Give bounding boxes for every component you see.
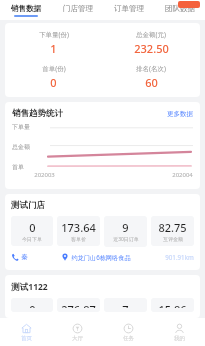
button[interactable]: Location [61, 253, 131, 261]
staticText: 团队数据 [165, 4, 195, 13]
staticText: 大厅 [72, 335, 83, 342]
staticText: 首单 [12, 163, 24, 171]
staticText: 60 [145, 75, 158, 90]
staticText: 互评金额 [163, 236, 183, 242]
staticText: 排名(名次) [136, 64, 166, 73]
staticText: 9 [122, 220, 129, 235]
button[interactable]: 首单(份) [5, 64, 102, 90]
button[interactable]: 首页 [0, 318, 52, 346]
staticText: 今日下单 [22, 236, 42, 242]
staticText: 销售趋势统计 [12, 108, 63, 119]
button[interactable]: 任务 [103, 318, 154, 346]
staticText: 7 [122, 302, 129, 308]
button[interactable]: 销售数据 [0, 0, 52, 20]
staticText: 更多数据 [167, 110, 193, 118]
staticText: 0 [50, 75, 57, 90]
button[interactable]: 门店管理 [52, 0, 103, 20]
staticText: 门店管理 [63, 4, 93, 13]
staticText: 下单量 [12, 123, 30, 131]
staticText: 901.91km [165, 253, 194, 261]
button[interactable]: 173.64 [57, 216, 100, 246]
staticText: 首页 [21, 335, 32, 342]
staticText: 0 [29, 302, 36, 308]
staticText: 我的 [174, 335, 185, 342]
button[interactable]: 我的 [154, 318, 205, 346]
staticText: 约龙门山6栋网络食品 [71, 253, 131, 261]
staticText: 202004 [172, 171, 193, 179]
staticText: 0 [29, 220, 36, 235]
staticText: 总金额(元) [136, 30, 166, 39]
button[interactable]: Action [178, 1, 200, 8]
staticText: 15.86 [158, 302, 187, 308]
staticText: 276.87 [61, 302, 96, 308]
button[interactable]: 7 [104, 298, 147, 312]
button[interactable]: 测试门店 [5, 194, 200, 270]
button[interactable]: 15.86 [151, 298, 194, 312]
staticText: 首单(份) [42, 64, 66, 73]
button[interactable]: 排名(名次) [102, 64, 200, 90]
button[interactable]: 9 [104, 216, 147, 247]
staticText: 销售数据 [11, 4, 41, 13]
button[interactable]: 276.87 [57, 298, 100, 312]
staticText: 订单管理 [114, 4, 144, 13]
button[interactable]: 0 [11, 216, 53, 246]
button[interactable]: Call [11, 253, 28, 261]
button[interactable]: 团队数据 [154, 0, 205, 20]
staticText: 任务 [123, 335, 134, 342]
button[interactable]: 测试1122 [5, 275, 200, 318]
staticText: 测试1122 [11, 281, 48, 293]
button[interactable]: 下单量(份) [5, 30, 102, 56]
button[interactable]: 大厅 [52, 318, 103, 346]
button[interactable]: 更多数据 [167, 110, 193, 118]
staticText: 秦 [21, 253, 28, 261]
staticText: 202003 [34, 171, 55, 179]
button[interactable]: 0 [11, 298, 53, 312]
staticText: 客单价 [71, 236, 86, 242]
staticText: 82.75 [158, 220, 187, 235]
staticText: 232.50 [134, 41, 169, 56]
staticText: 1 [50, 41, 57, 56]
staticText: 近30日订单 [113, 236, 139, 243]
staticText: 173.64 [61, 220, 96, 235]
staticText: 测试门店 [11, 200, 45, 211]
button[interactable]: 82.75 [151, 216, 194, 246]
staticText: 总金额 [12, 143, 30, 151]
button[interactable]: 订单管理 [103, 0, 154, 20]
button[interactable]: 总金额(元) [102, 30, 200, 56]
staticText: 下单量(份) [39, 30, 69, 39]
